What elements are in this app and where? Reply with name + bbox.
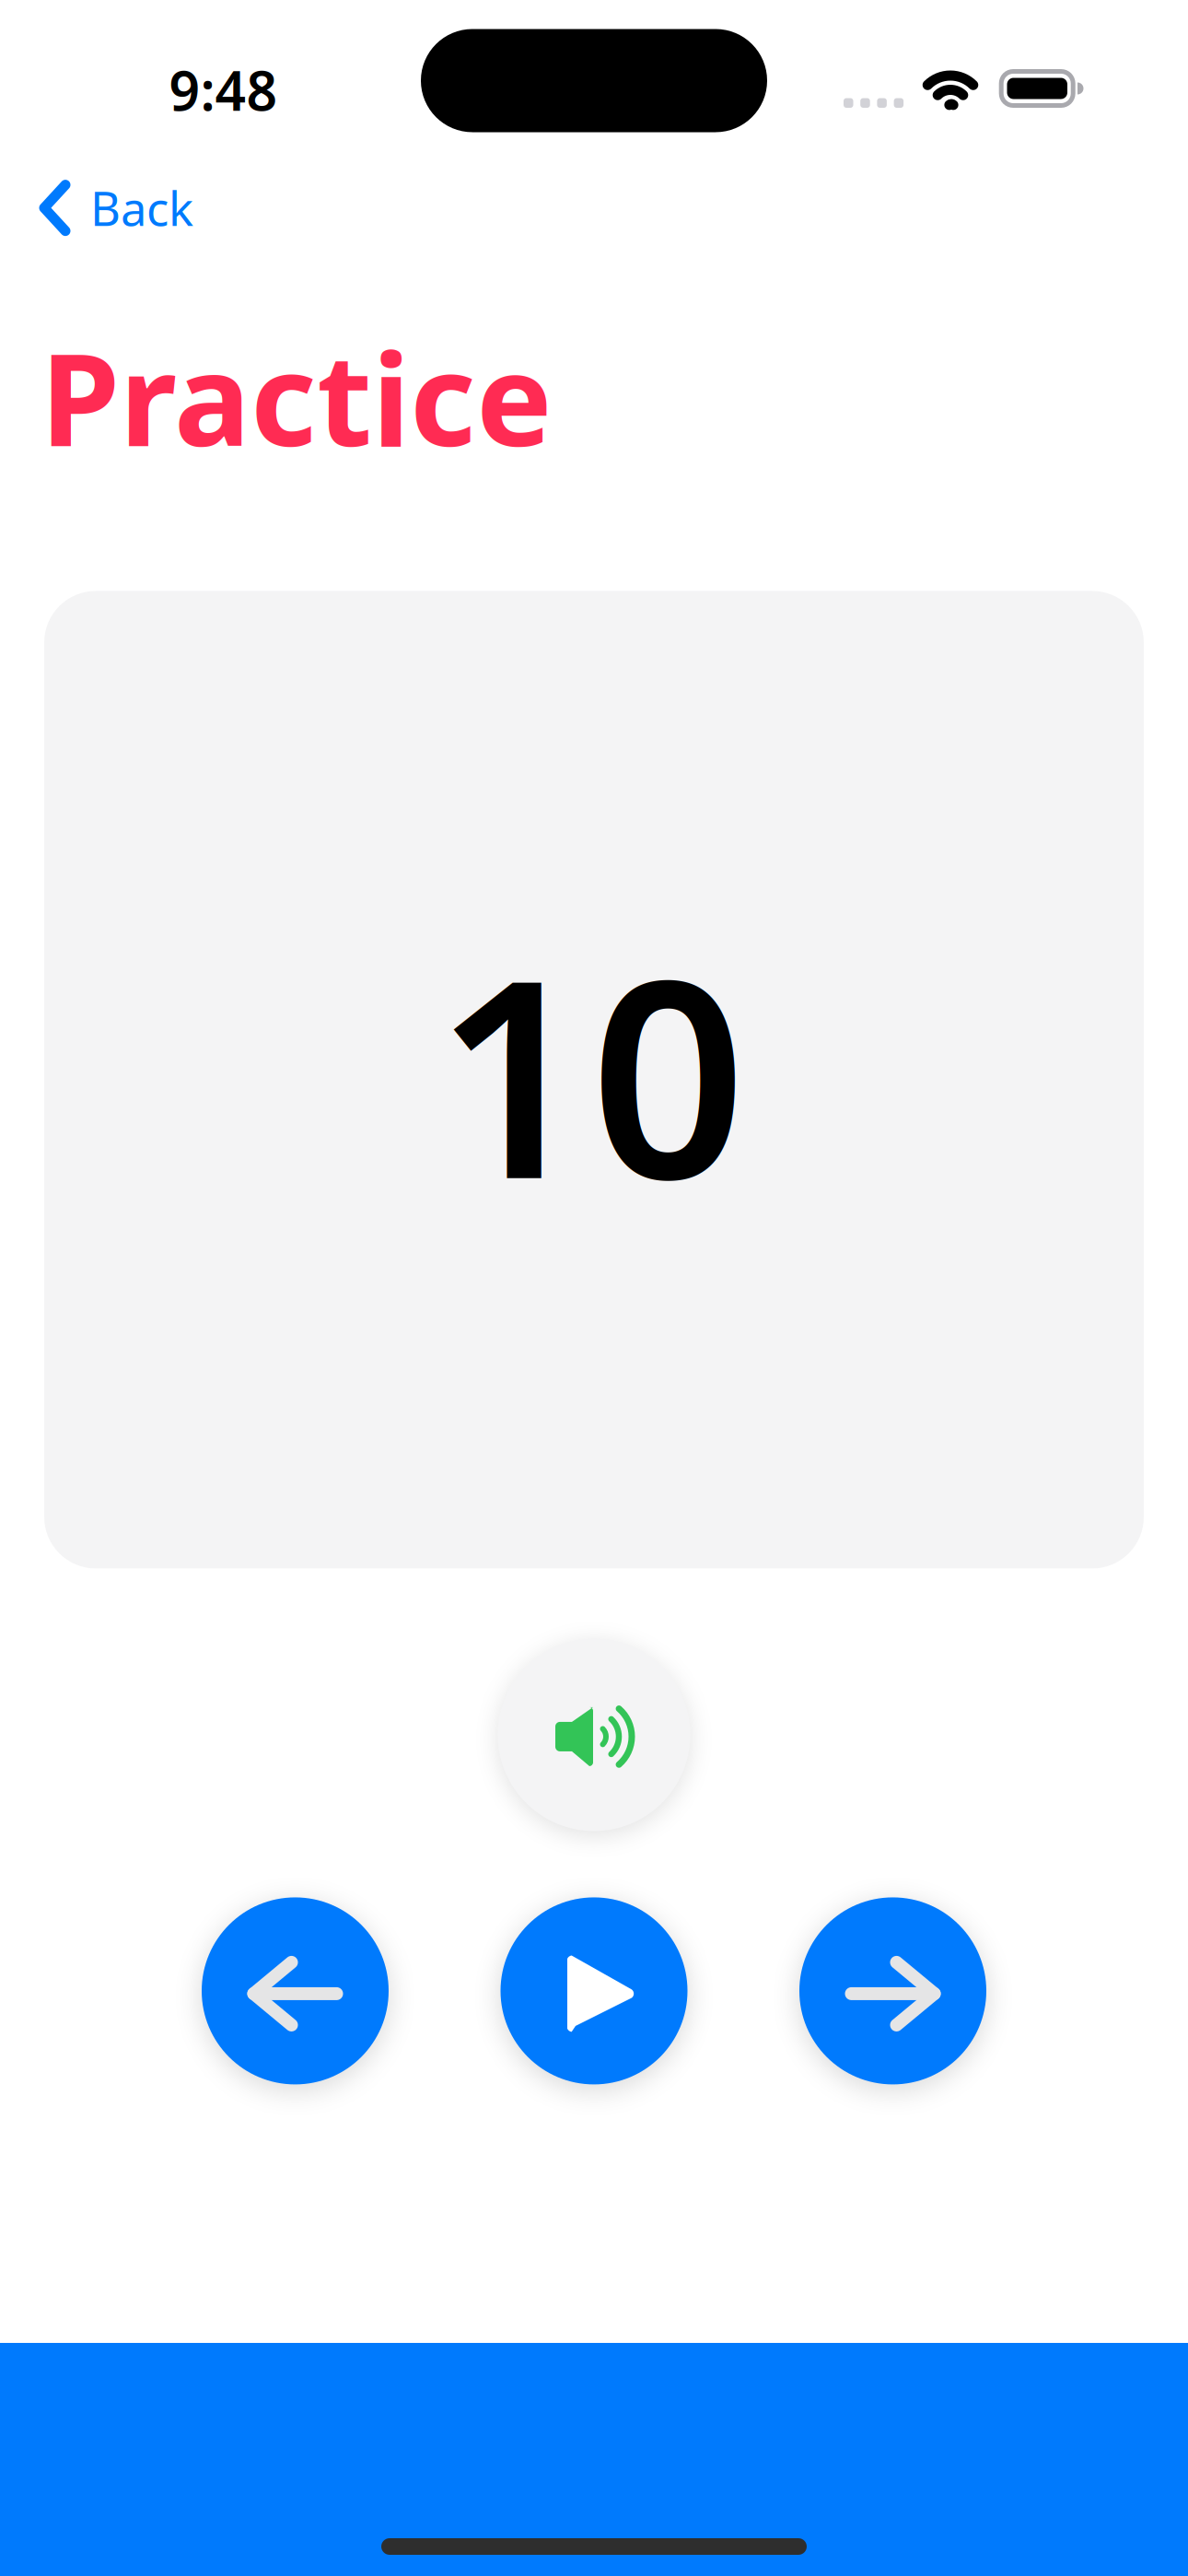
button[interactable]: Back <box>0 150 221 255</box>
staticText: Practice <box>41 312 553 481</box>
button[interactable]: Previous card <box>202 1897 389 2084</box>
staticText: 9:48 <box>169 54 278 126</box>
button[interactable]: Play audio <box>498 1638 690 1831</box>
button[interactable]: Next card <box>799 1897 986 2084</box>
button[interactable]: Play <box>501 1897 687 2084</box>
staticText: 10 <box>435 891 746 1253</box>
staticText: Back <box>90 177 193 239</box>
